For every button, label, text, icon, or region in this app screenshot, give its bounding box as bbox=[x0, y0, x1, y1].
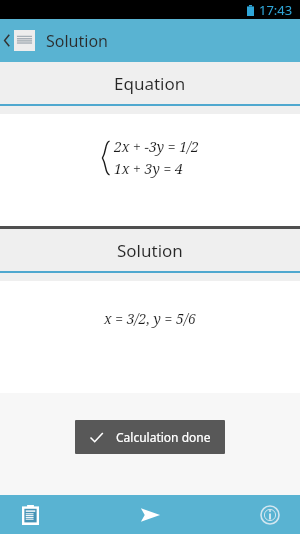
button[interactable]: Calculation done bbox=[75, 420, 225, 454]
staticText: 17:43 bbox=[259, 1, 293, 19]
staticText: x = 3/2, y = 5/6 bbox=[104, 309, 196, 328]
button[interactable]: Send bbox=[126, 495, 174, 534]
button[interactable]: Navigate up bbox=[0, 19, 38, 62]
staticText: Equation bbox=[114, 72, 186, 95]
staticText: Solution bbox=[46, 30, 108, 52]
staticText: 2x + −3y = 1/2 bbox=[114, 137, 199, 156]
staticText: 1x + 3y = 4 bbox=[114, 159, 183, 178]
button[interactable]: Copy to clipboard bbox=[10, 495, 50, 534]
staticText: Calculation done bbox=[116, 429, 211, 445]
button[interactable]: Info bbox=[250, 495, 290, 534]
staticText: Solution bbox=[117, 239, 183, 262]
